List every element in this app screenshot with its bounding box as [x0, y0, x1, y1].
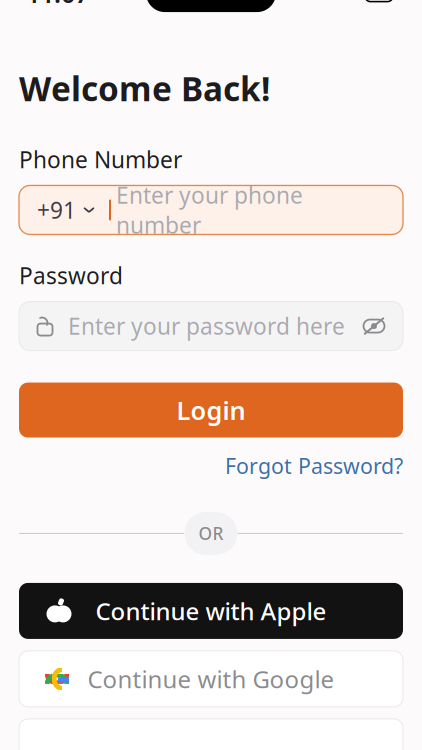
button[interactable]: Login [19, 383, 403, 438]
staticText: Enter your phone number [116, 180, 303, 240]
staticText: Login [176, 393, 245, 427]
button[interactable]: Continue with Apple [19, 583, 403, 639]
button[interactable]: Forgot Password? [225, 452, 403, 480]
staticText: Enter your password here [68, 311, 345, 341]
staticText: 11:07 [26, 0, 89, 10]
staticText: +91 [37, 195, 76, 225]
staticText: Continue with Google [87, 663, 334, 695]
staticText: Password [19, 260, 123, 291]
staticText: Forgot Password? [225, 452, 403, 480]
button[interactable]: +91 [19, 185, 403, 234]
staticText: Welcome Back! [19, 66, 270, 110]
staticText: Phone Number [19, 144, 182, 174]
staticText: Continue with Apple [95, 595, 326, 627]
button[interactable]: Continue with Google [19, 651, 403, 707]
button[interactable]: Enter your password here [19, 302, 403, 351]
staticText: OR [198, 522, 223, 545]
